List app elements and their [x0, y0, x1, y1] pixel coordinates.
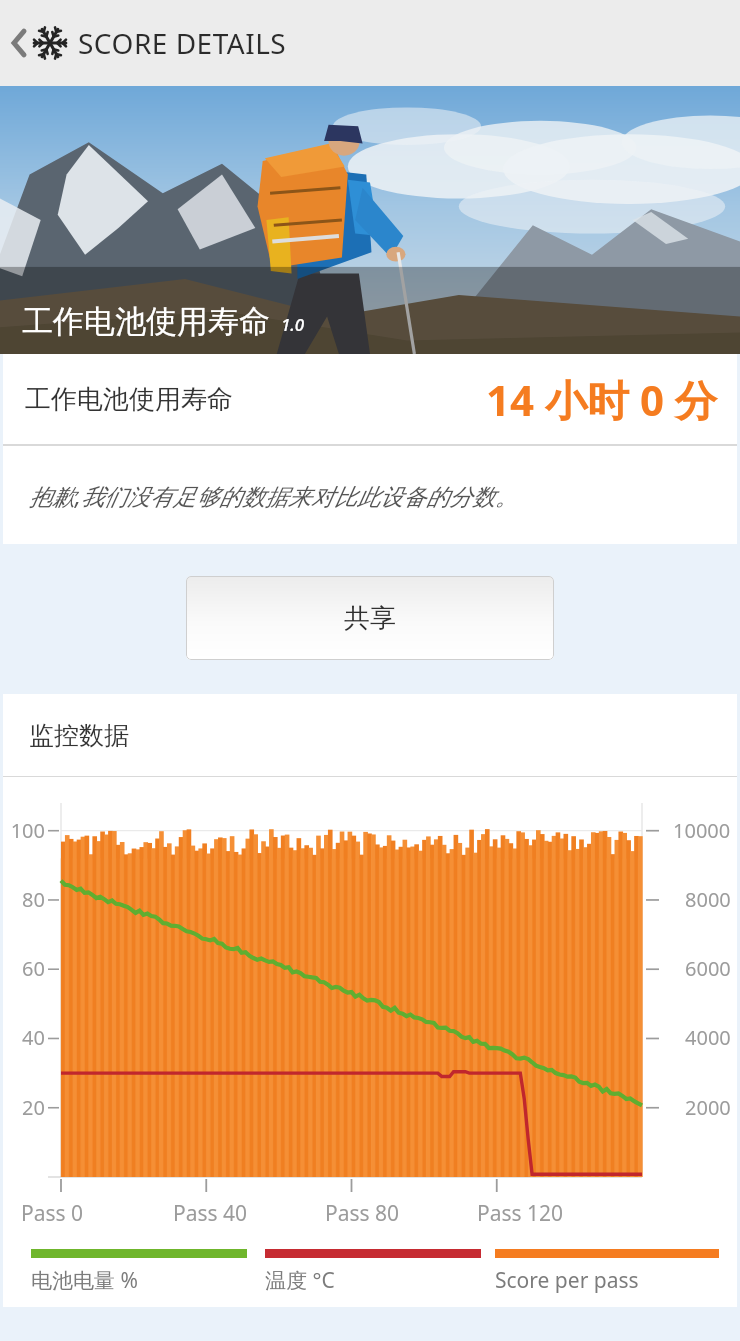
other: Back — [9, 25, 29, 61]
staticText: 80 — [3, 886, 45, 913]
staticText: Pass 0 — [21, 1199, 84, 1228]
button[interactable]: Score per pass — [495, 1249, 719, 1295]
staticText: SCORE DETAILS — [78, 24, 287, 62]
button[interactable]: 工作电池使用寿命 — [0, 86, 740, 354]
staticText: Pass 40 — [173, 1199, 248, 1228]
staticText: 温度 °C — [265, 1266, 335, 1295]
staticText: 2000 — [685, 1094, 731, 1121]
staticText: 20 — [3, 1094, 45, 1121]
staticText: 抱歉,我们没有足够的数据来对比此设备的分数。 — [29, 480, 518, 511]
button[interactable]: 抱歉,我们没有足够的数据来对比此设备的分数。 — [3, 446, 737, 544]
button[interactable]: 工作电池使用寿命 — [3, 354, 737, 444]
button[interactable]: Back — [0, 0, 740, 86]
staticText: 6000 — [685, 955, 731, 982]
staticText: 工作电池使用寿命 — [25, 383, 233, 416]
staticText: 工作电池使用寿命 — [22, 302, 270, 341]
staticText: 4000 — [685, 1024, 731, 1051]
button[interactable]: 共享 — [186, 576, 554, 660]
staticText: 100 — [3, 817, 45, 844]
staticText: 监控数据 — [29, 720, 129, 751]
staticText: 40 — [3, 1024, 45, 1051]
button[interactable]: 电池电量 % — [31, 1249, 247, 1295]
staticText: 8000 — [685, 886, 731, 913]
staticText: 1.0 — [281, 313, 305, 336]
staticText: 共享 — [344, 602, 396, 635]
button[interactable]: 监控数据 — [3, 694, 737, 776]
staticText: Pass 120 — [477, 1199, 564, 1228]
staticText: 60 — [3, 955, 45, 982]
staticText: Score per pass — [495, 1266, 639, 1295]
button[interactable]: 温度 °C — [265, 1249, 481, 1295]
staticText: 14 小时 0 分 — [486, 371, 717, 428]
staticText: 10000 — [673, 817, 731, 844]
staticText: Pass 80 — [325, 1199, 400, 1228]
staticText: 电池电量 % — [31, 1266, 138, 1295]
